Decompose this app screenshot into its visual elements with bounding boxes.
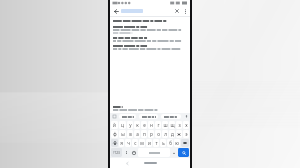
button[interactable]: ы: [119, 130, 126, 138]
staticText: у: [129, 122, 132, 128]
button[interactable]: Space: [138, 148, 170, 157]
button[interactable]: Back: [124, 160, 130, 166]
button[interactable]: и: [146, 139, 152, 147]
button[interactable]: о: [155, 130, 161, 138]
button[interactable]: е: [141, 121, 147, 129]
staticText: е: [143, 122, 146, 128]
staticText: л: [164, 131, 167, 137]
staticText: ц: [121, 122, 124, 128]
button[interactable]: я: [119, 139, 124, 147]
button[interactable]: м: [139, 139, 145, 147]
staticText: ж: [177, 131, 181, 137]
button[interactable]: у: [127, 121, 133, 129]
button[interactable]: Search: [178, 148, 189, 157]
button[interactable]: Clear search: [173, 7, 181, 15]
staticText: а: [136, 131, 139, 137]
staticText: и: [148, 140, 151, 146]
button[interactable]: ю: [174, 139, 180, 147]
button[interactable]: Clipboard: [112, 114, 117, 119]
staticText: х: [185, 122, 188, 128]
button[interactable]: [113, 20, 187, 22]
staticText: ч: [127, 140, 130, 146]
button[interactable]: ь: [160, 139, 166, 147]
button[interactable]: в: [127, 130, 133, 138]
button[interactable]: Period: [171, 148, 177, 157]
button[interactable]: ?123: [111, 148, 122, 157]
button[interactable]: ч: [125, 139, 131, 147]
button[interactable]: б: [167, 139, 173, 147]
staticText: н: [150, 122, 153, 128]
staticText: я: [120, 140, 123, 146]
button[interactable]: д: [169, 130, 175, 138]
button[interactable]: э: [183, 130, 189, 138]
button[interactable]: ф: [111, 130, 118, 138]
staticText: б: [169, 140, 172, 146]
button[interactable]: [161, 114, 181, 119]
button[interactable]: ж: [176, 130, 182, 138]
button[interactable]: к: [134, 121, 140, 129]
button[interactable]: с: [132, 139, 138, 147]
staticText: ш: [163, 122, 168, 128]
button[interactable]: [119, 114, 136, 119]
button[interactable]: щ: [169, 121, 175, 129]
staticText: э: [185, 131, 188, 137]
staticText: ?123: [113, 151, 120, 155]
button[interactable]: More options: [181, 7, 189, 15]
button[interactable]: ц: [119, 121, 126, 129]
button[interactable]: Home: [144, 162, 157, 164]
staticText: в: [129, 131, 132, 137]
button[interactable]: н: [148, 121, 154, 129]
button[interactable]: х: [183, 121, 189, 129]
button[interactable]: т: [153, 139, 159, 147]
button[interactable]: Emoji: [130, 148, 137, 157]
button[interactable]: Voice input: [184, 114, 189, 119]
button[interactable]: Symbols: [123, 148, 129, 157]
staticText: р: [150, 131, 153, 137]
button[interactable]: з: [176, 121, 182, 129]
button[interactable]: Delete: [181, 139, 189, 147]
button[interactable]: [113, 106, 187, 113]
staticText: ю: [175, 140, 179, 146]
button[interactable]: г: [155, 121, 161, 129]
button[interactable]: [113, 45, 187, 50]
staticText: з: [178, 122, 181, 128]
staticText: й: [113, 122, 116, 128]
staticText: ы: [121, 131, 125, 137]
staticText: т: [155, 140, 158, 146]
button[interactable]: ш: [162, 121, 168, 129]
button[interactable]: р: [148, 130, 154, 138]
button[interactable]: [139, 114, 158, 119]
button[interactable]: [113, 26, 187, 34]
button[interactable]: й: [111, 121, 118, 129]
staticText: м: [140, 140, 144, 146]
staticText: к: [136, 122, 139, 128]
button[interactable]: п: [141, 130, 147, 138]
staticText: о: [157, 131, 160, 137]
staticText: ь: [162, 140, 165, 146]
button[interactable]: Back: [112, 7, 120, 15]
button[interactable]: л: [162, 130, 168, 138]
button[interactable]: [113, 37, 187, 42]
staticText: д: [171, 131, 174, 137]
button[interactable]: Shift: [111, 139, 118, 147]
staticText: с: [134, 140, 137, 146]
button[interactable]: а: [134, 130, 140, 138]
staticText: п: [143, 131, 146, 137]
staticText: щ: [170, 122, 175, 128]
staticText: ф: [113, 131, 117, 137]
staticText: г: [157, 122, 160, 128]
